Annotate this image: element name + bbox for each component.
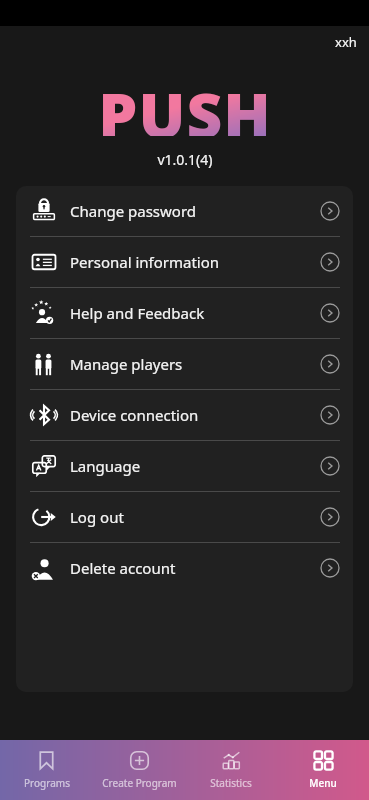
button[interactable]: Manage players (16, 339, 353, 389)
button[interactable]: Change password (16, 186, 353, 236)
button[interactable]: Programs (0, 740, 93, 800)
staticText: Programs (24, 776, 70, 790)
staticText: xxh (335, 33, 357, 51)
button[interactable]: Create Program (93, 740, 185, 800)
staticText: Change password (70, 201, 197, 221)
button[interactable]: Statistics (185, 740, 277, 800)
staticText: Device connection (70, 405, 199, 425)
staticText: Manage players (70, 354, 183, 374)
staticText: Help and Feedback (70, 303, 205, 323)
staticText: Statistics (210, 776, 252, 790)
staticText: Language (70, 456, 141, 476)
button[interactable]: Personal information (16, 237, 353, 287)
staticText: PUSH (73, 72, 297, 136)
button[interactable]: Delete account (16, 543, 353, 593)
staticText: Log out (70, 507, 124, 527)
staticText: Create Program (102, 776, 177, 790)
button[interactable]: Menu (277, 740, 369, 800)
staticText: Personal information (70, 252, 220, 272)
button[interactable]: Help and Feedback (16, 288, 353, 338)
staticText: Delete account (70, 558, 176, 578)
button[interactable]: Language (16, 441, 353, 491)
staticText: v1.0.1(4) (157, 150, 213, 169)
button[interactable]: Log out (16, 492, 353, 542)
button[interactable]: Device connection (16, 390, 353, 440)
staticText: Menu (309, 776, 337, 790)
